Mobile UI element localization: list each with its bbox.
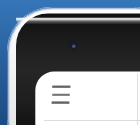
button[interactable]: Menu [0, 0, 140, 125]
